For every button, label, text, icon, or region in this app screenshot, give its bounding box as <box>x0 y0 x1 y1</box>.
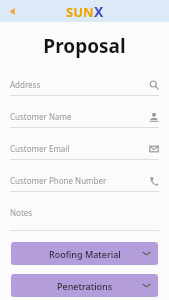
staticText: Customer Name <box>10 111 149 122</box>
staticText: Customer Phone Number <box>10 175 149 186</box>
staticText: X <box>94 2 104 21</box>
button[interactable]: Roofing Material <box>11 242 158 265</box>
staticText: Address <box>10 79 149 90</box>
staticText: Notes <box>10 207 33 218</box>
staticText: Customer Email <box>10 143 149 154</box>
button[interactable]: Customer Email <box>0 138 169 170</box>
button[interactable]: Customer Phone Number <box>0 170 169 202</box>
staticText: Proposal <box>43 33 126 59</box>
button[interactable]: Address <box>0 74 169 106</box>
staticText: Roofing Material <box>49 248 121 260</box>
staticText: SUN <box>66 3 94 21</box>
button[interactable]: Customer Name <box>0 106 169 138</box>
button[interactable]: Penetrations <box>11 274 158 297</box>
button[interactable]: Back <box>4 3 20 19</box>
button[interactable]: Notes <box>0 202 169 231</box>
staticText: Penetrations <box>57 280 113 292</box>
